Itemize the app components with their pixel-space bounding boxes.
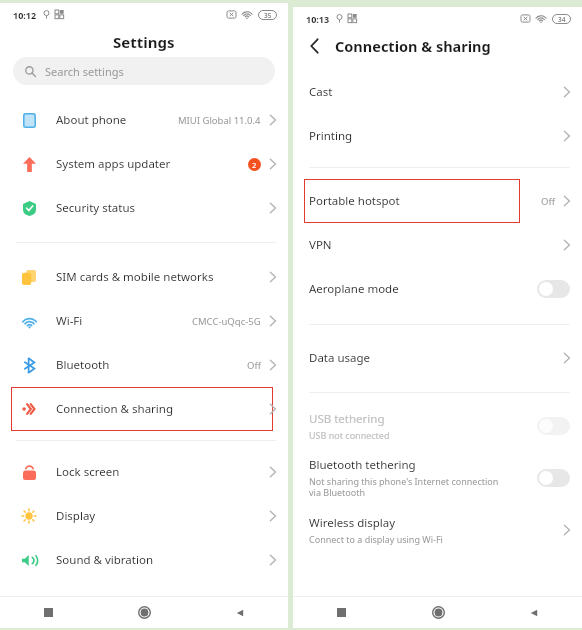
button[interactable]: Wi-Fi [0,299,288,343]
button[interactable]: Back [293,30,335,61]
staticText: Connect to a display using Wi-Fi [309,533,443,545]
button[interactable]: Home [390,597,486,628]
button[interactable]: Home [96,597,192,628]
staticText: MIUI Global 11.0.4 [178,114,261,127]
button[interactable]: Aeroplane mode [293,267,582,311]
button[interactable]: Lock screen [0,450,288,494]
button[interactable]: USB tethering [293,403,582,449]
staticText: 35 [264,11,272,20]
staticText: Wi-Fi [56,313,83,329]
staticText: Off [541,195,555,208]
staticText: USB not connected [309,429,390,441]
staticText: Not sharing this phone's Internet connec… [309,475,499,499]
button[interactable]: Recents [293,597,390,628]
button[interactable]: Back [486,597,582,628]
button[interactable] [537,417,570,435]
button[interactable] [537,280,570,298]
staticText: VPN [309,237,332,253]
staticText: Data usage [309,350,371,366]
staticText: Display [56,508,96,524]
button[interactable]: VPN [293,223,582,267]
button[interactable]: Bluetooth [0,343,288,387]
staticText: Connection & sharing [56,401,173,417]
button[interactable] [537,469,570,487]
button[interactable]: About phone [0,98,288,142]
staticText: Portable hotspot [309,193,400,209]
button[interactable]: Wireless display [293,507,582,553]
staticText: Connection & sharing [335,36,491,56]
staticText: SIM cards & mobile networks [56,269,214,285]
staticText: Aeroplane mode [309,281,399,297]
button[interactable]: Search settings [13,57,275,85]
staticText: Sound & vibration [56,552,153,568]
staticText: Bluetooth [56,357,110,373]
staticText: 10:12 [13,9,37,21]
button[interactable]: Data usage [293,336,582,380]
staticText: Lock screen [56,464,120,480]
staticText: 34 [558,15,566,24]
staticText: CMCC-uQqc-5G [192,315,261,328]
button[interactable]: Sound & vibration [0,538,288,582]
button[interactable]: Display [0,494,288,538]
staticText: Security status [56,200,136,216]
staticText: 10:13 [306,13,330,25]
button[interactable]: Bluetooth tethering [293,449,582,507]
staticText: Off [247,359,261,372]
staticText: Bluetooth tethering [309,457,416,473]
button[interactable]: Recents [0,597,96,628]
staticText: 2 [252,160,257,170]
staticText: Cast [309,84,333,100]
staticText: Printing [309,128,353,144]
staticText: Settings [113,32,175,52]
staticText: About phone [56,112,127,128]
staticText: System apps updater [56,156,171,172]
button[interactable]: Back [192,597,288,628]
staticText: Search settings [45,64,124,79]
button[interactable]: Portable hotspot [309,179,570,223]
button[interactable]: Connection & sharing [16,387,276,431]
button[interactable]: Printing [293,114,582,158]
button[interactable]: Cast [293,70,582,114]
button[interactable]: Security status [0,186,288,230]
button[interactable]: System apps updater [0,142,288,186]
staticText: USB tethering [309,411,385,427]
staticText: Wireless display [309,515,396,531]
button[interactable]: SIM cards & mobile networks [0,255,288,299]
